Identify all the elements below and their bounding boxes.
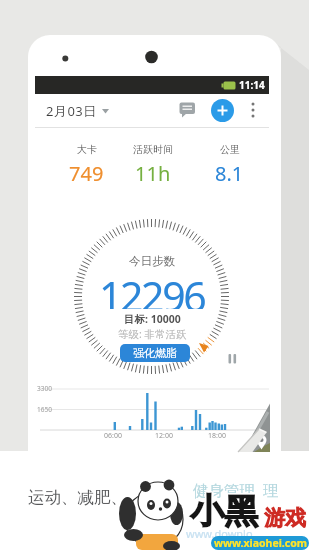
button[interactable]	[247, 100, 259, 120]
button[interactable]: 2月03日	[46, 100, 109, 122]
staticText: 强化燃脂	[133, 346, 177, 360]
staticText: 小黑	[189, 489, 257, 532]
staticText: 18:00	[208, 431, 226, 441]
staticText: 小黑	[190, 489, 258, 532]
staticText: 游戏	[263, 504, 305, 530]
staticText: 理	[263, 481, 279, 501]
button[interactable]: 强化燃脂	[120, 344, 190, 362]
button[interactable]	[227, 353, 239, 365]
staticText: 今日步数	[129, 254, 175, 268]
staticText: 小黑	[189, 490, 257, 533]
staticText: 游戏	[265, 504, 307, 530]
staticText: 小黑	[191, 491, 259, 534]
button[interactable]: 活跃时间	[119, 143, 186, 187]
staticText: 公里	[220, 143, 240, 156]
staticText: www.xiaohei.com	[214, 536, 307, 550]
staticText: 游戏	[263, 506, 305, 532]
staticText: 小黑	[190, 492, 258, 535]
staticText: 运动、减肥、	[28, 487, 127, 508]
staticText: 11h	[135, 160, 171, 187]
staticText: 小黑	[191, 489, 259, 532]
staticText: 游戏	[264, 504, 306, 530]
button[interactable]	[236, 403, 270, 452]
staticText: 活跃时间	[133, 143, 173, 156]
staticText: 11:14	[239, 78, 265, 92]
staticText: 小黑	[189, 491, 257, 534]
button[interactable]: www.xiaohei.com	[211, 536, 309, 550]
staticText: 小黑	[192, 490, 260, 533]
staticText: 2月03日	[46, 102, 97, 120]
staticText: 小黑	[190, 490, 258, 533]
staticText: 等级: 非常活跃	[118, 327, 187, 341]
staticText: 游戏	[266, 505, 308, 531]
staticText: www.downlo	[186, 526, 253, 541]
staticText: 3300	[37, 384, 52, 393]
staticText: 749	[69, 160, 104, 187]
staticText: 健身管理	[193, 481, 255, 501]
staticText: 大卡	[77, 143, 97, 156]
staticText: 12296	[99, 268, 205, 309]
staticText: 游戏	[264, 505, 306, 531]
staticText: 12:00	[155, 431, 173, 441]
staticText: 8.1	[215, 160, 244, 187]
button[interactable]: 大卡	[53, 143, 120, 187]
button[interactable]	[211, 99, 234, 122]
staticText: 游戏	[265, 506, 307, 532]
staticText: 1650	[37, 405, 52, 414]
staticText: 游戏	[264, 507, 306, 533]
button[interactable]	[179, 102, 197, 119]
staticText: 目标: 10000	[124, 312, 181, 326]
staticText: 游戏	[263, 505, 305, 531]
button[interactable]: 公里	[196, 143, 263, 187]
staticText: 06:00	[104, 431, 122, 441]
